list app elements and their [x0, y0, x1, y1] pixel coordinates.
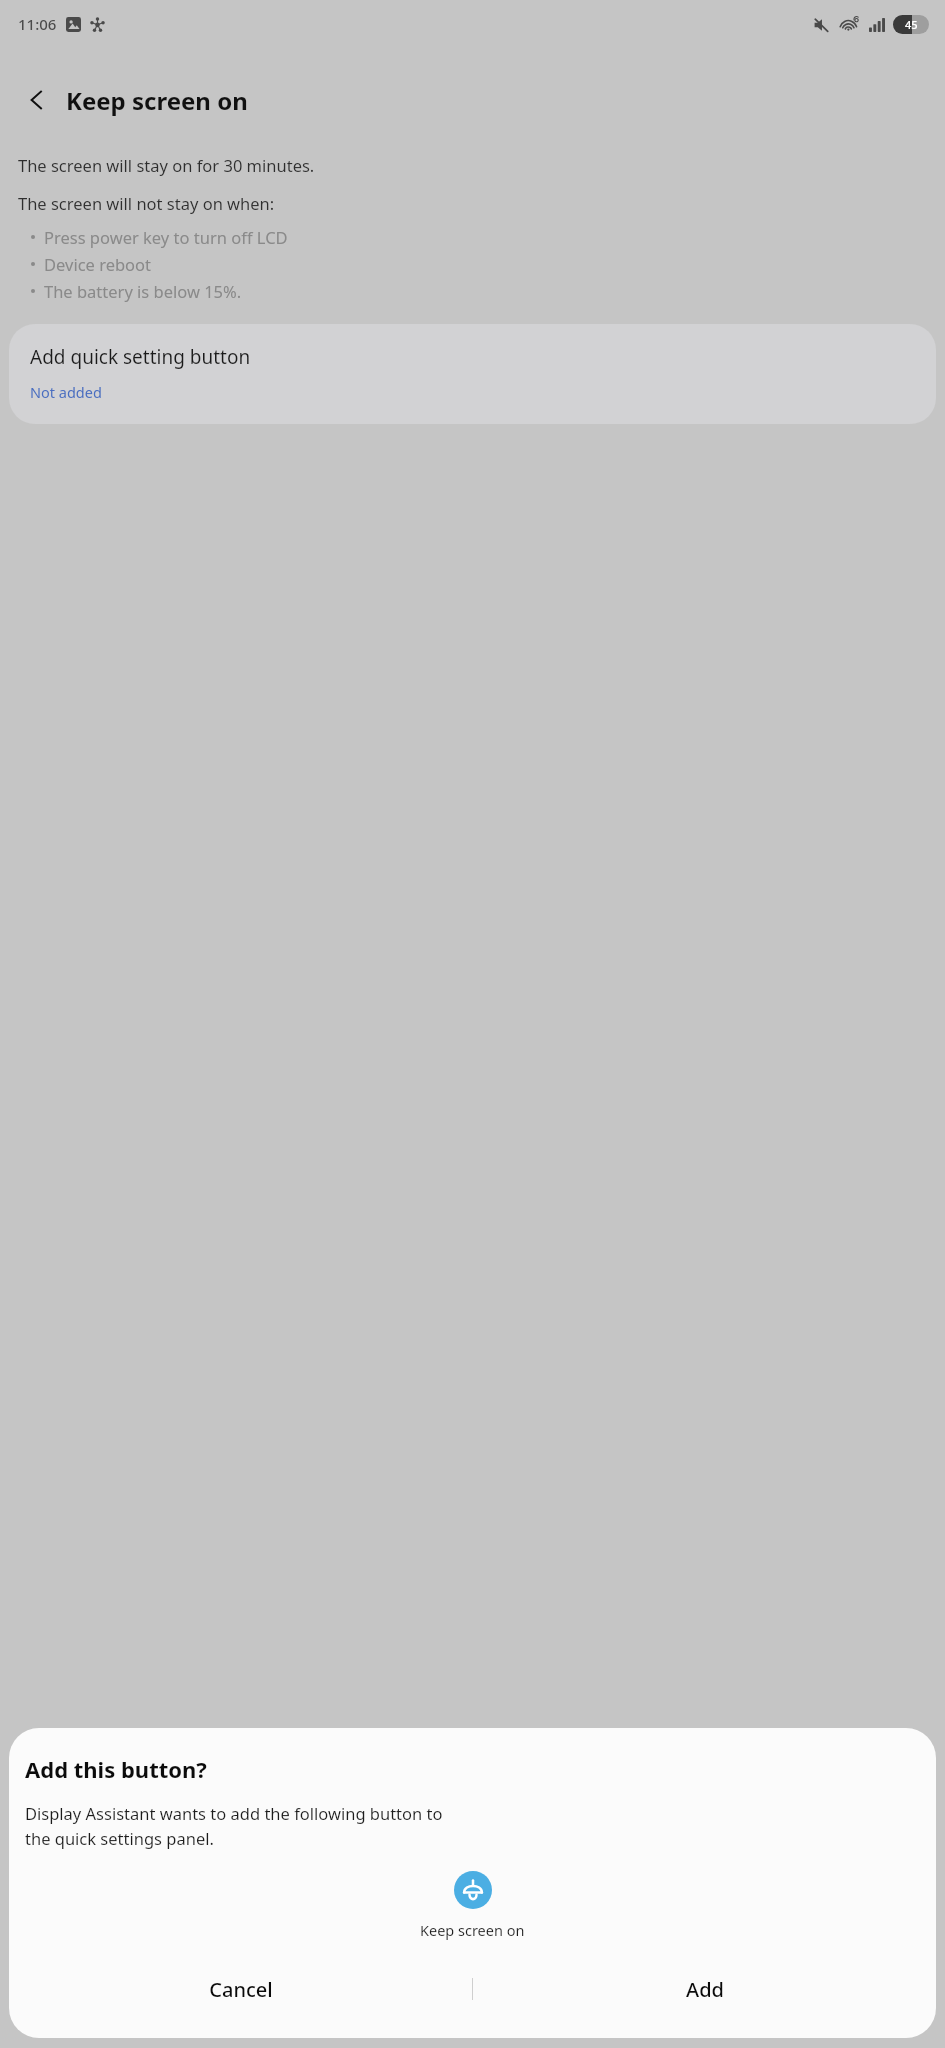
staticText: Add this button? — [25, 1754, 207, 1784]
staticText: Keep screen on — [420, 1920, 525, 1940]
staticText: Display Assistant wants to add the follo… — [25, 1802, 443, 1849]
staticText: Cancel — [209, 1976, 273, 2003]
staticText: 45 — [905, 17, 918, 32]
staticText: Press power key to turn off LCD — [44, 226, 288, 248]
button[interactable]: Add — [473, 1966, 936, 2012]
button[interactable]: Cancel — [9, 1966, 472, 2012]
staticText: The battery is below 15%. — [44, 280, 242, 302]
staticText: Add quick setting button — [30, 344, 251, 370]
staticText: 11:06 — [18, 14, 57, 34]
button[interactable]: Back — [14, 77, 60, 123]
staticText: Device reboot — [44, 253, 152, 275]
staticText: The screen will not stay on when: — [18, 192, 275, 214]
staticText: The screen will stay on for 30 minutes. — [18, 154, 315, 176]
button[interactable]: Add quick setting button — [9, 324, 936, 424]
staticText: Not added — [30, 382, 102, 402]
staticText: Add — [686, 1976, 724, 2003]
staticText: Keep screen on — [66, 84, 248, 117]
